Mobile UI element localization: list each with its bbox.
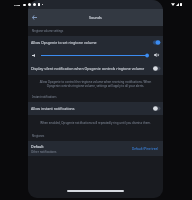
staticText: 11:29 bbox=[14, 3, 21, 6]
staticText: Sounds bbox=[89, 15, 102, 20]
button[interactable]: Back bbox=[28, 11, 41, 24]
button[interactable] bbox=[41, 53, 149, 58]
button[interactable]: Toggle off bbox=[151, 105, 161, 112]
button[interactable]: Toggle on bbox=[151, 39, 161, 46]
staticText: Allow instant notifications bbox=[31, 106, 149, 111]
button[interactable]: Toggle off bbox=[151, 65, 161, 72]
staticText: Default (Pine tree) bbox=[132, 147, 159, 151]
button[interactable]: Display silent notification when Opsgeni… bbox=[28, 62, 163, 75]
staticText: Display silent notification when Opsgeni… bbox=[31, 66, 149, 71]
staticText: When enabled, Opsgenie notifications wil… bbox=[40, 121, 151, 125]
staticText: Allow Opsgenie to set ringtone volume bbox=[31, 40, 149, 45]
staticText: Ringtones bbox=[32, 134, 45, 138]
staticText: Default bbox=[31, 144, 44, 149]
staticText: Ringtone volume settings bbox=[32, 29, 64, 33]
button[interactable]: Allow instant notifications bbox=[28, 102, 163, 115]
button[interactable]: Allow Opsgenie to set ringtone volume bbox=[28, 36, 163, 48]
staticText: Other notifications bbox=[31, 150, 57, 154]
button[interactable]: Default bbox=[28, 141, 163, 156]
staticText: Instant notifications bbox=[32, 95, 57, 99]
staticText: Allow Opsgenie to control the ringtone v… bbox=[36, 80, 155, 88]
